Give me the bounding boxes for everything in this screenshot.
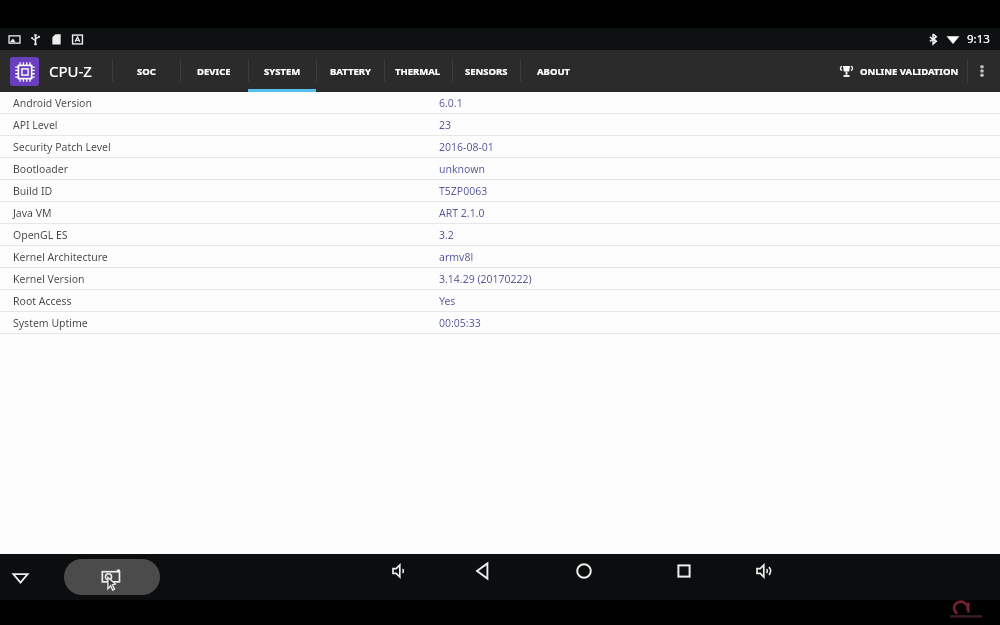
button[interactable]: Volume down — [384, 554, 418, 588]
staticText: Security Patch Level — [13, 140, 111, 154]
staticText: unknown — [439, 162, 485, 176]
staticText: ABOUT — [537, 65, 571, 78]
button[interactable]: Screenshot — [64, 559, 160, 595]
staticText: SOC — [137, 65, 156, 78]
staticText: T5ZP0063 — [439, 184, 488, 198]
staticText: 00:05:33 — [439, 316, 481, 330]
button[interactable]: DEVICE — [180, 50, 248, 92]
button[interactable]: Kernel Version — [0, 268, 1000, 290]
button[interactable]: API Level — [0, 114, 1000, 136]
staticText: OpenGL ES — [13, 228, 68, 242]
button[interactable]: Recent apps — [667, 554, 701, 588]
staticText: Kernel Architecture — [13, 250, 108, 264]
button[interactable]: ONLINE VALIDATION — [831, 50, 967, 92]
staticText: Android Version — [13, 96, 92, 110]
staticText: ART 2.1.0 — [439, 206, 485, 220]
button[interactable]: SENSORS — [452, 50, 520, 92]
staticText: Build ID — [13, 184, 53, 198]
button[interactable]: Kernel Architecture — [0, 246, 1000, 268]
button[interactable]: More options — [968, 50, 996, 92]
button[interactable]: Java VM — [0, 202, 1000, 224]
button[interactable]: Hide navigation bar — [6, 563, 34, 591]
staticText: THERMAL — [395, 65, 441, 78]
staticText: Bootloader — [13, 162, 68, 176]
staticText: Kernel Version — [13, 272, 85, 286]
staticText: Root Access — [13, 294, 72, 308]
staticText: Yes — [439, 294, 456, 308]
staticText: 3.2 — [439, 228, 454, 242]
button[interactable]: Android Version — [0, 92, 1000, 114]
button[interactable]: Security Patch Level — [0, 136, 1000, 158]
staticText: ONLINE VALIDATION — [860, 65, 959, 78]
button[interactable]: SOC — [112, 50, 180, 92]
staticText: API Level — [13, 118, 58, 132]
staticText: BATTERY — [330, 65, 371, 78]
button[interactable]: Volume up — [748, 554, 782, 588]
staticText: 9:13 — [967, 31, 990, 47]
button[interactable]: CPU-Z logo — [10, 57, 39, 86]
button[interactable]: Back — [466, 554, 500, 588]
staticText: 6.0.1 — [439, 96, 463, 110]
button[interactable]: Root Access — [0, 290, 1000, 312]
staticText: CPU-Z — [49, 61, 92, 81]
staticText: 3.14.29 (20170222) — [439, 272, 532, 286]
button[interactable]: SYSTEM — [248, 50, 316, 92]
button[interactable]: THERMAL — [384, 50, 452, 92]
staticText: armv8l — [439, 250, 474, 264]
button[interactable]: Bootloader — [0, 158, 1000, 180]
button[interactable]: BATTERY — [316, 50, 384, 92]
staticText: 2016-08-01 — [439, 140, 494, 154]
button[interactable]: OpenGL ES — [0, 224, 1000, 246]
staticText: Java VM — [13, 206, 52, 220]
button[interactable]: Home — [567, 554, 601, 588]
staticText: 23 — [439, 118, 452, 132]
staticText: DEVICE — [197, 65, 231, 78]
button[interactable]: System Uptime — [0, 312, 1000, 334]
button[interactable]: Build ID — [0, 180, 1000, 202]
staticText: SYSTEM — [264, 65, 301, 78]
staticText: SENSORS — [465, 65, 508, 78]
button[interactable]: ABOUT — [520, 50, 588, 92]
staticText: System Uptime — [13, 316, 88, 330]
